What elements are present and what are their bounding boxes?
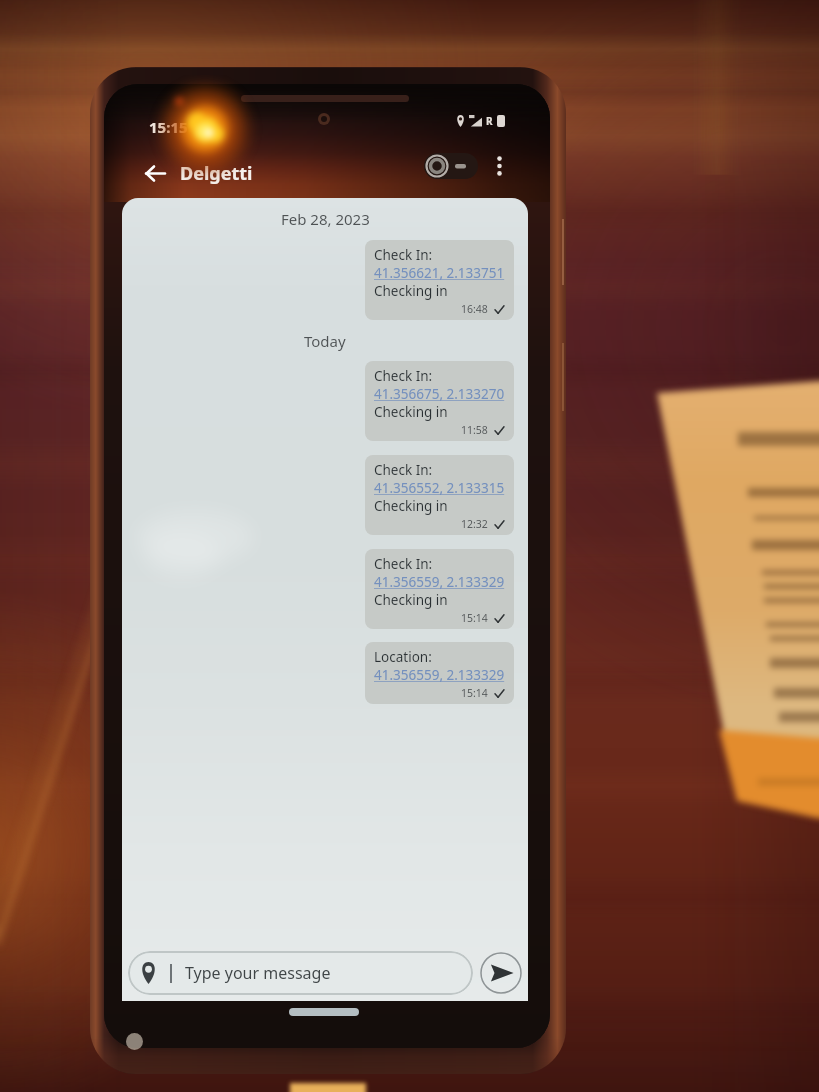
staticText: 15:14	[461, 611, 488, 625]
staticText: 16:48	[461, 302, 488, 316]
staticText: 41.356621, 2.133751	[374, 264, 505, 282]
button[interactable]: Video call	[424, 153, 478, 179]
staticText: Location:	[374, 648, 432, 666]
staticText: Checking in	[374, 403, 448, 421]
staticText: 41.356559, 2.133329	[374, 573, 505, 591]
button[interactable]: Send	[478, 950, 524, 996]
staticText: 41.356559, 2.133329	[374, 666, 505, 684]
button[interactable]: Check In:	[365, 240, 514, 320]
staticText: R	[486, 114, 493, 128]
staticText: Checking in	[374, 282, 448, 300]
button[interactable]: Back	[142, 160, 168, 186]
staticText: 15:14	[461, 686, 488, 700]
staticText: Check In:	[374, 461, 433, 479]
button[interactable]: Location:	[365, 642, 514, 704]
staticText: Check In:	[374, 246, 433, 264]
staticText: 12:32	[461, 517, 488, 531]
staticText: Check In:	[374, 555, 433, 573]
staticText: 41.356675, 2.133270	[374, 385, 505, 403]
staticText: 11:58	[461, 423, 488, 437]
staticText: Type your message	[185, 962, 331, 984]
button[interactable]: Check In:	[365, 455, 514, 535]
button[interactable]: Check In:	[365, 361, 514, 441]
staticText: 15:15	[149, 117, 188, 137]
staticText: Checking in	[374, 591, 448, 609]
button[interactable]: More options	[489, 152, 509, 180]
staticText: Check In:	[374, 367, 433, 385]
staticText: Feb 28, 2023	[281, 209, 370, 229]
button[interactable]: Type your message	[128, 951, 473, 995]
staticText: Today	[304, 331, 346, 351]
staticText: 41.356552, 2.133315	[374, 479, 505, 497]
staticText: Checking in	[374, 497, 448, 515]
button[interactable]: Delgetti	[180, 161, 253, 186]
button[interactable]: Check In:	[365, 549, 514, 629]
